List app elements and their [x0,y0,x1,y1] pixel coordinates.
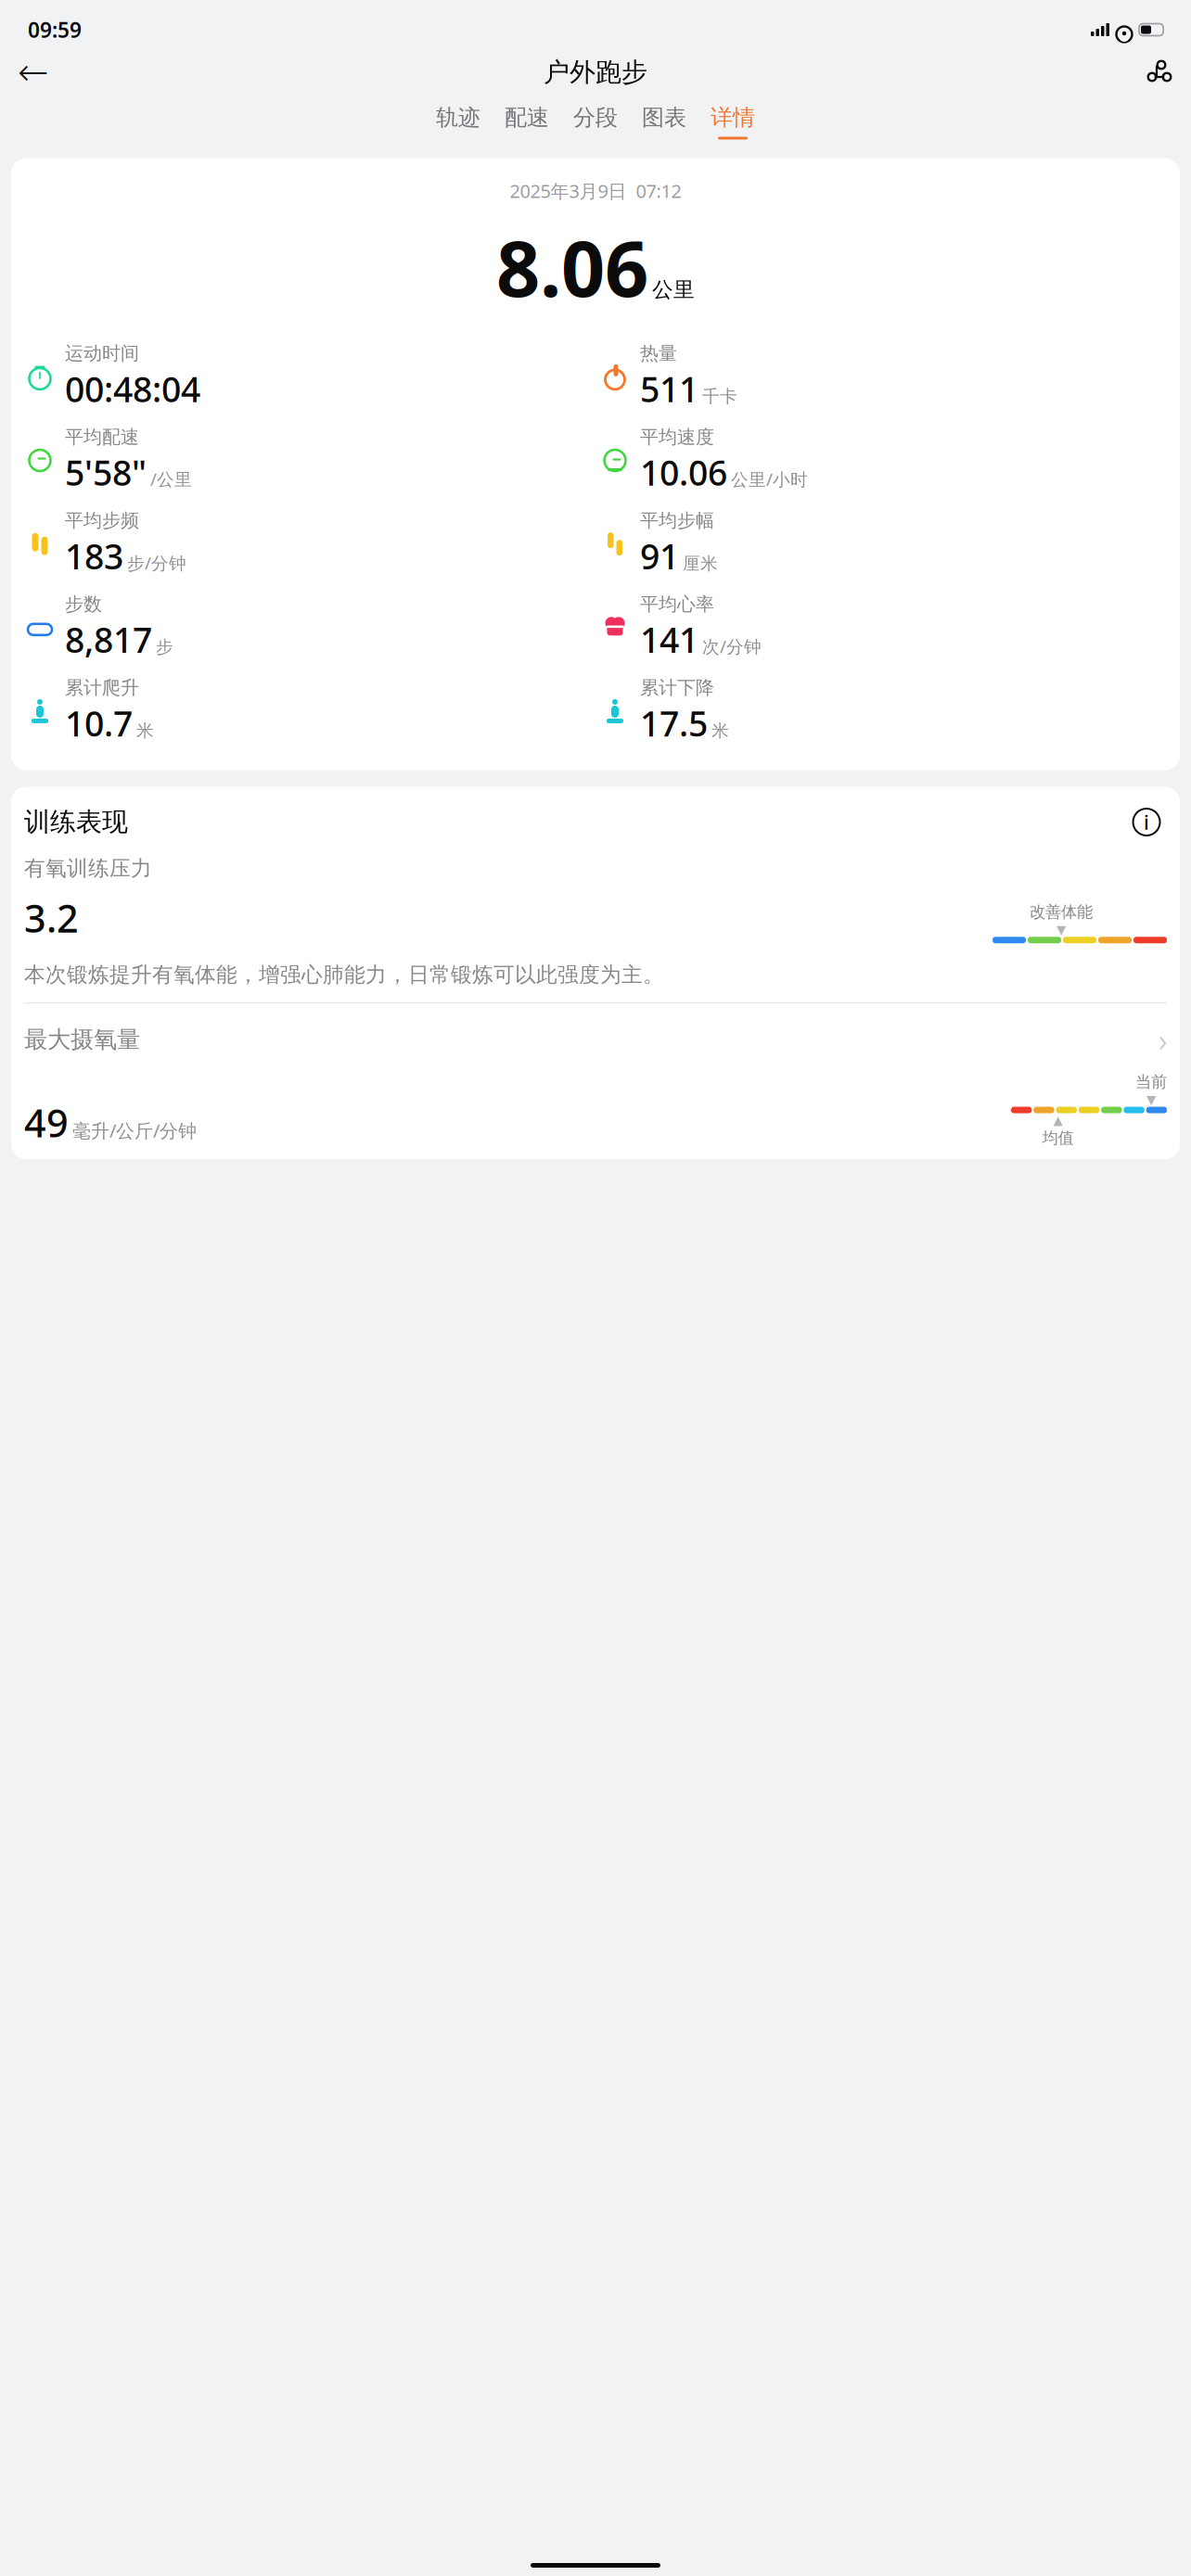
staticText: 热量 [640,342,677,365]
button[interactable]: 累计爬升 [24,676,592,746]
staticText: 当前 [1135,1072,1167,1092]
staticText: 累计爬升 [65,676,139,699]
staticText: 步/分钟 [127,551,186,574]
staticText: 详情 [711,104,755,131]
staticText: 图表 [642,104,686,131]
staticText: 2025年3月9日 07:12 [510,179,681,203]
button[interactable]: 分享 [1137,52,1178,93]
staticText: › [1159,1018,1167,1061]
staticText: 累计下降 [640,676,714,699]
staticText: 511 [640,366,698,412]
staticText: ← [18,51,49,93]
button[interactable]: 返回 [13,52,54,93]
button[interactable]: 步数 [24,593,592,662]
staticText: 平均步幅 [640,509,714,532]
button[interactable]: 平均速度 [599,426,1167,495]
staticText: 步 [156,636,173,658]
button[interactable]: 运动时间 [24,342,592,412]
staticText: 平均心率 [640,593,714,616]
staticText: ▼ [1146,1093,1156,1107]
staticText: 改善体能 [1030,902,1093,922]
button[interactable]: 图表 [630,98,698,145]
staticText: 最大摄氧量 [24,1025,140,1054]
button[interactable]: 累计下降 [599,676,1167,746]
button[interactable]: 轨迹 [424,98,493,145]
staticText: 平均步频 [65,509,139,532]
staticText: 米 [136,720,154,741]
staticText: 千卡 [702,386,737,407]
button[interactable]: 平均步幅 [599,509,1167,579]
staticText: 次/分钟 [702,635,762,658]
staticText: 分段 [573,104,618,131]
staticText: 轨迹 [436,104,480,131]
staticText: 8.06 [496,216,648,318]
staticText: 配速 [505,104,549,131]
staticText: 10.06 [640,449,727,495]
button[interactable]: 平均心率 [599,593,1167,662]
button[interactable]: 热量 [599,342,1167,412]
staticText: i [1144,809,1149,835]
button[interactable]: 平均步频 [24,509,592,579]
staticText: /公里 [150,468,192,491]
staticText: 5'58" [65,449,147,495]
button[interactable]: 详情 [698,98,767,145]
staticText: 00:48:04 [65,366,200,412]
staticText: 户外跑步 [544,56,647,88]
staticText: 8,817 [65,616,152,662]
staticText: 17.5 [640,700,708,746]
staticText: ▲ [1053,1113,1063,1127]
staticText: 步数 [65,593,102,616]
staticText: 49 [24,1097,69,1148]
staticText: 平均速度 [640,426,714,448]
staticText: 毫升/公斤/分钟 [72,1118,197,1143]
staticText: 有氧训练压力 [24,855,152,881]
staticText: 训练表现 [24,806,128,838]
button[interactable]: 平均配速 [24,426,592,495]
button[interactable]: 最大摄氧量 [24,1003,1167,1066]
button[interactable]: 说明 [1126,802,1167,842]
button[interactable]: 分段 [561,98,630,145]
button[interactable]: 配速 [493,98,561,145]
staticText: 183 [65,533,123,579]
staticText: 本次锻炼提升有氧体能，增强心肺能力，日常锻炼可以此强度为主。 [24,962,664,988]
staticText: 均值 [1042,1128,1074,1148]
staticText: 厘米 [683,553,718,574]
staticText: 141 [640,616,698,662]
staticText: 公里 [652,277,695,303]
staticText: 91 [640,533,679,579]
staticText: 公里/小时 [731,468,808,491]
staticText: 平均配速 [65,426,139,448]
staticText: 09:59 [28,16,82,44]
staticText: 运动时间 [65,342,139,365]
staticText: 米 [711,720,729,741]
staticText: 3.2 [24,892,79,943]
staticText: ▼ [1057,923,1066,937]
staticText: 10.7 [65,700,133,746]
